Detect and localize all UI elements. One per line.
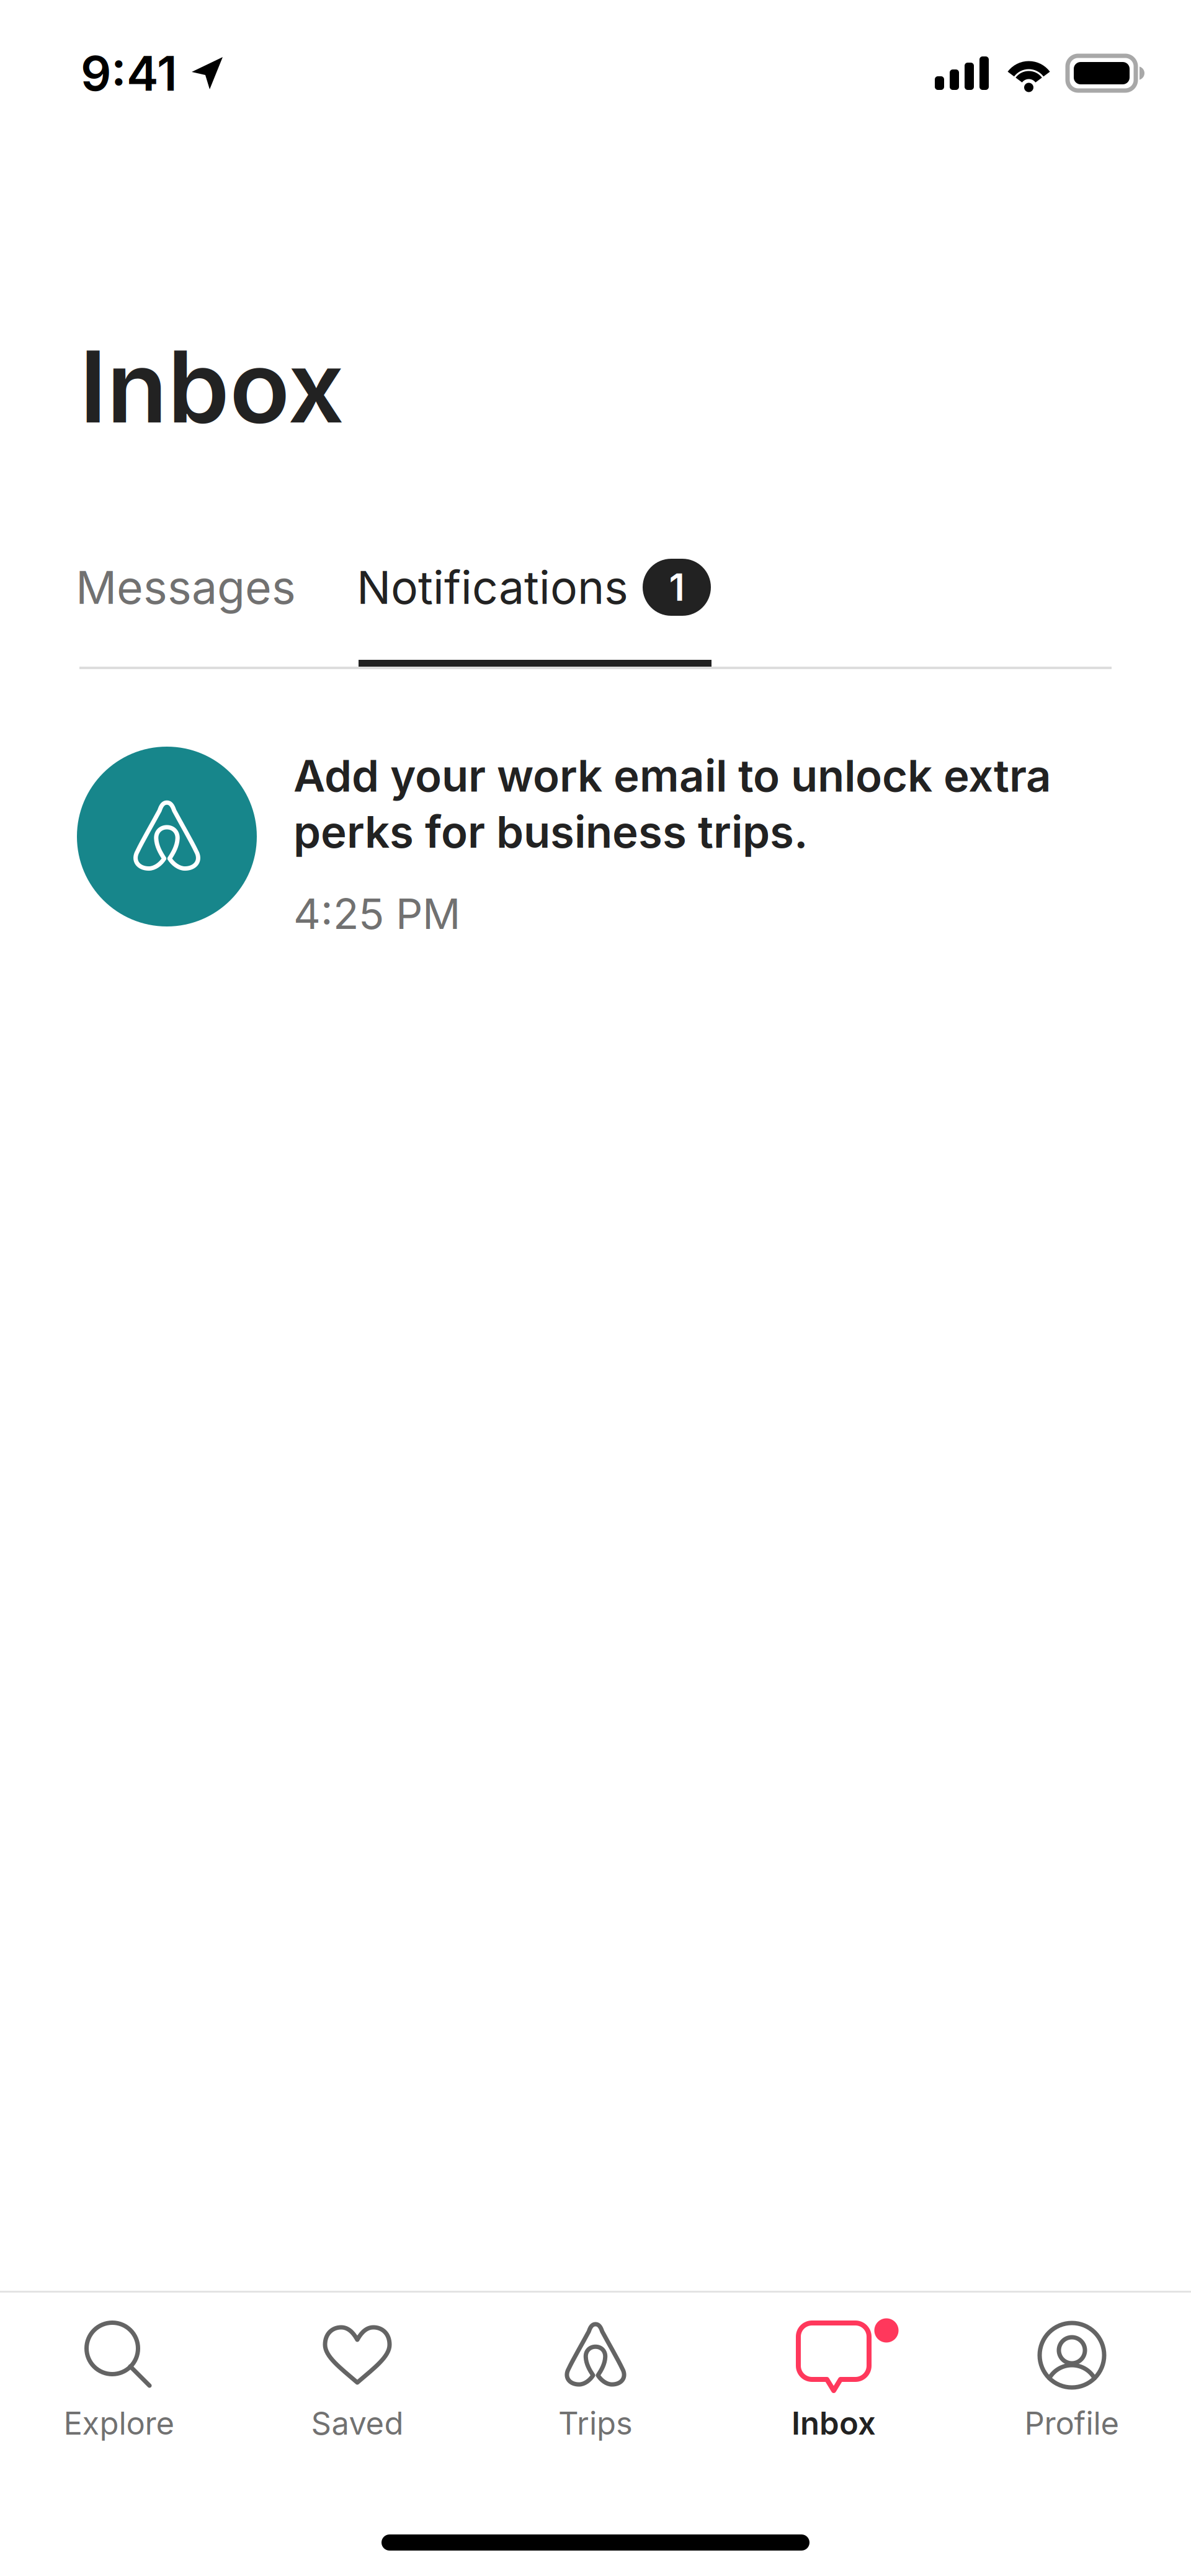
button[interactable]: Add your work email to unlock extra perk… bbox=[0, 672, 1191, 939]
staticText: Add your work email to unlock extra perk… bbox=[293, 749, 1051, 858]
staticText: Inbox bbox=[792, 2404, 876, 2442]
button[interactable]: Saved bbox=[238, 2293, 476, 2442]
staticText: Profile bbox=[1024, 2404, 1119, 2442]
button[interactable]: Explore bbox=[0, 2293, 238, 2442]
staticText: Messages bbox=[76, 560, 296, 615]
button[interactable]: Trips bbox=[476, 2293, 715, 2442]
button[interactable]: Inbox bbox=[715, 2293, 953, 2442]
staticText: 4:25 PM bbox=[293, 888, 460, 939]
button[interactable]: Profile bbox=[953, 2293, 1191, 2442]
button[interactable]: Messages bbox=[0, 555, 357, 620]
button[interactable]: Notifications bbox=[357, 555, 748, 620]
staticText: Saved bbox=[311, 2404, 404, 2442]
staticText: Notifications bbox=[357, 560, 628, 615]
staticText: 9:41 bbox=[81, 44, 177, 102]
staticText: Trips bbox=[558, 2404, 633, 2442]
staticText: 1 bbox=[669, 565, 685, 610]
staticText: Inbox bbox=[79, 326, 344, 446]
staticText: Explore bbox=[64, 2404, 175, 2442]
